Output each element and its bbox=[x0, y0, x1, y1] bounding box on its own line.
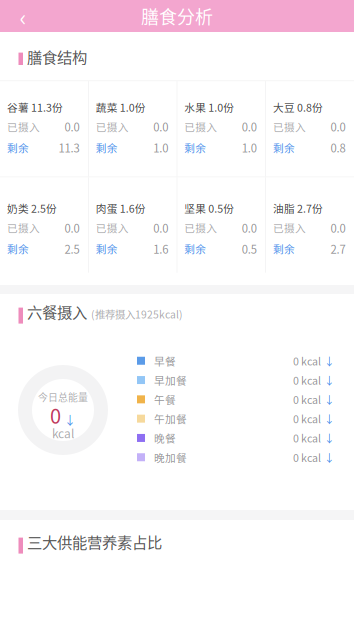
staticText: 油脂 2.7份 bbox=[273, 200, 323, 216]
staticText: 已摄入 bbox=[184, 119, 217, 134]
staticText: 已摄入 bbox=[273, 220, 306, 235]
staticText: 0.8 bbox=[330, 139, 345, 156]
staticText: 晚加餐 bbox=[154, 449, 187, 465]
staticText: 午加餐 bbox=[154, 411, 187, 426]
button[interactable]: Back bbox=[0, 0, 46, 32]
staticText: 0.0 bbox=[64, 118, 79, 135]
staticText: ↓ bbox=[64, 411, 76, 428]
button[interactable]: 早餐 bbox=[137, 351, 335, 370]
staticText: 肉蛋 1.6份 bbox=[96, 200, 146, 216]
staticText: 0 kcal bbox=[293, 353, 321, 368]
staticText: 1.0 bbox=[153, 139, 168, 156]
staticText: 已摄入 bbox=[273, 119, 306, 134]
staticText: ‹ bbox=[19, 0, 26, 32]
button[interactable]: 午餐 bbox=[137, 390, 335, 409]
staticText: ↓ bbox=[324, 353, 335, 368]
staticText: 剩余 bbox=[7, 241, 29, 256]
staticText: 2.5 bbox=[64, 240, 79, 257]
staticText: 0.0 bbox=[64, 219, 79, 236]
staticText: 11.3 bbox=[58, 139, 79, 156]
staticText: 2.7 bbox=[330, 240, 345, 257]
staticText: 已摄入 bbox=[7, 119, 40, 134]
staticText: 已摄入 bbox=[96, 220, 129, 235]
staticText: 剩余 bbox=[96, 140, 118, 155]
staticText: 大豆 0.8份 bbox=[273, 99, 323, 115]
staticText: 蔬菜 1.0份 bbox=[96, 99, 146, 115]
staticText: 0 bbox=[50, 400, 61, 429]
staticText: 0.0 bbox=[330, 118, 345, 135]
staticText: 0.0 bbox=[242, 118, 257, 135]
staticText: kcal bbox=[52, 424, 74, 442]
staticText: 水果 1.0份 bbox=[184, 99, 234, 115]
staticText: 1.6 bbox=[153, 240, 168, 257]
staticText: 早餐 bbox=[154, 353, 176, 368]
staticText: 膳食分析 bbox=[141, 3, 213, 29]
staticText: ↓ bbox=[324, 411, 335, 426]
staticText: ↓ bbox=[324, 430, 335, 446]
staticText: (推荐摄入1925kcal) bbox=[91, 306, 183, 322]
button[interactable]: 早加餐 bbox=[137, 370, 335, 390]
staticText: 0 kcal bbox=[293, 372, 321, 388]
staticText: 六餐摄入 bbox=[27, 300, 87, 323]
staticText: 今日总能量 bbox=[38, 390, 88, 404]
staticText: 0 kcal bbox=[293, 449, 321, 465]
staticText: ↓ bbox=[324, 392, 335, 407]
staticText: 晚餐 bbox=[154, 430, 176, 446]
staticText: 午餐 bbox=[154, 392, 176, 407]
staticText: 谷薯 11.3份 bbox=[7, 99, 63, 115]
staticText: ↓ bbox=[324, 449, 335, 465]
staticText: 剩余 bbox=[96, 241, 118, 256]
staticText: 0 kcal bbox=[293, 430, 321, 446]
staticText: 1.0 bbox=[242, 139, 257, 156]
staticText: 0 kcal bbox=[293, 392, 321, 407]
staticText: 坚果 0.5份 bbox=[184, 200, 234, 216]
staticText: 已摄入 bbox=[184, 220, 217, 235]
staticText: 0 kcal bbox=[293, 411, 321, 426]
staticText: 已摄入 bbox=[7, 220, 40, 235]
staticText: 三大供能营养素占比 bbox=[27, 530, 162, 553]
button[interactable]: 晚加餐 bbox=[137, 448, 335, 467]
staticText: 剩余 bbox=[273, 140, 295, 155]
staticText: 膳食结构 bbox=[27, 45, 87, 68]
button[interactable]: 午加餐 bbox=[137, 409, 335, 428]
staticText: 早加餐 bbox=[154, 372, 187, 388]
staticText: 剩余 bbox=[184, 241, 206, 256]
staticText: 剩余 bbox=[184, 140, 206, 155]
staticText: 0.0 bbox=[242, 219, 257, 236]
staticText: 0.0 bbox=[330, 219, 345, 236]
staticText: 奶类 2.5份 bbox=[7, 200, 57, 216]
staticText: 0.0 bbox=[153, 118, 168, 135]
staticText: 0.0 bbox=[153, 219, 168, 236]
button[interactable]: 晚餐 bbox=[137, 428, 335, 448]
staticText: 已摄入 bbox=[96, 119, 129, 134]
staticText: 0.5 bbox=[242, 240, 257, 257]
staticText: ↓ bbox=[324, 372, 335, 388]
staticText: 剩余 bbox=[273, 241, 295, 256]
staticText: 剩余 bbox=[7, 140, 29, 155]
